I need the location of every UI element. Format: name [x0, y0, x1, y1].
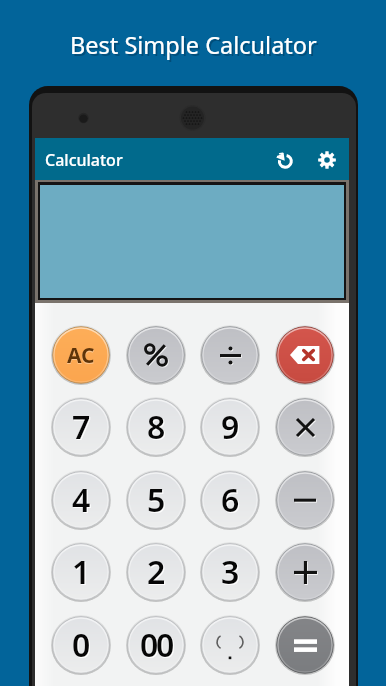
staticText: 3 [222, 551, 241, 595]
staticText: AC [67, 341, 95, 370]
button[interactable]: History [269, 138, 301, 182]
staticText: 5 [147, 478, 166, 522]
button[interactable]: 6 [200, 470, 260, 530]
staticText: AC [67, 342, 95, 371]
staticText: 00 [141, 624, 173, 668]
staticText: Best Simple Calculator [70, 29, 317, 61]
staticText: 3 [221, 550, 240, 594]
staticText: 5 [148, 479, 167, 523]
staticText: 6 [222, 479, 241, 523]
staticText: 1 [72, 550, 91, 594]
button[interactable]: 7 [51, 397, 111, 457]
staticText: 0 [73, 624, 92, 668]
button[interactable] [275, 615, 335, 675]
button[interactable]: 9 [200, 397, 260, 457]
button[interactable]: AC [51, 325, 111, 385]
button[interactable]: 8 [126, 397, 186, 457]
staticText: Best Simple Calculator [72, 31, 319, 63]
staticText: 9 [221, 405, 240, 449]
staticText: 7 [72, 405, 91, 449]
button[interactable]: 1 [51, 542, 111, 602]
staticText: 2 [147, 550, 166, 594]
button[interactable] [275, 470, 335, 530]
staticText: 6 [221, 478, 240, 522]
button[interactable] [200, 325, 260, 385]
button[interactable] [275, 397, 335, 457]
button[interactable]: 2 [126, 542, 186, 602]
button[interactable] [126, 325, 186, 385]
staticText: 7 [73, 406, 92, 450]
button[interactable] [275, 542, 335, 602]
staticText: Calculator [45, 149, 123, 171]
button[interactable]: 4 [51, 470, 111, 530]
staticText: 0 [72, 623, 91, 667]
button[interactable] [275, 325, 335, 385]
button[interactable]: 5 [126, 470, 186, 530]
button[interactable]: Settings [311, 138, 343, 182]
staticText: 8 [148, 406, 167, 450]
staticText: 4 [72, 478, 91, 522]
button[interactable]: 00 [126, 615, 186, 675]
staticText: 1 [73, 551, 92, 595]
button[interactable]: 0 [51, 615, 111, 675]
staticText: 8 [147, 405, 166, 449]
staticText: 2 [148, 551, 167, 595]
button[interactable] [200, 615, 260, 675]
button[interactable]: 3 [200, 542, 260, 602]
staticText: 9 [222, 406, 241, 450]
staticText: 4 [73, 479, 92, 523]
staticText: 00 [140, 623, 172, 667]
